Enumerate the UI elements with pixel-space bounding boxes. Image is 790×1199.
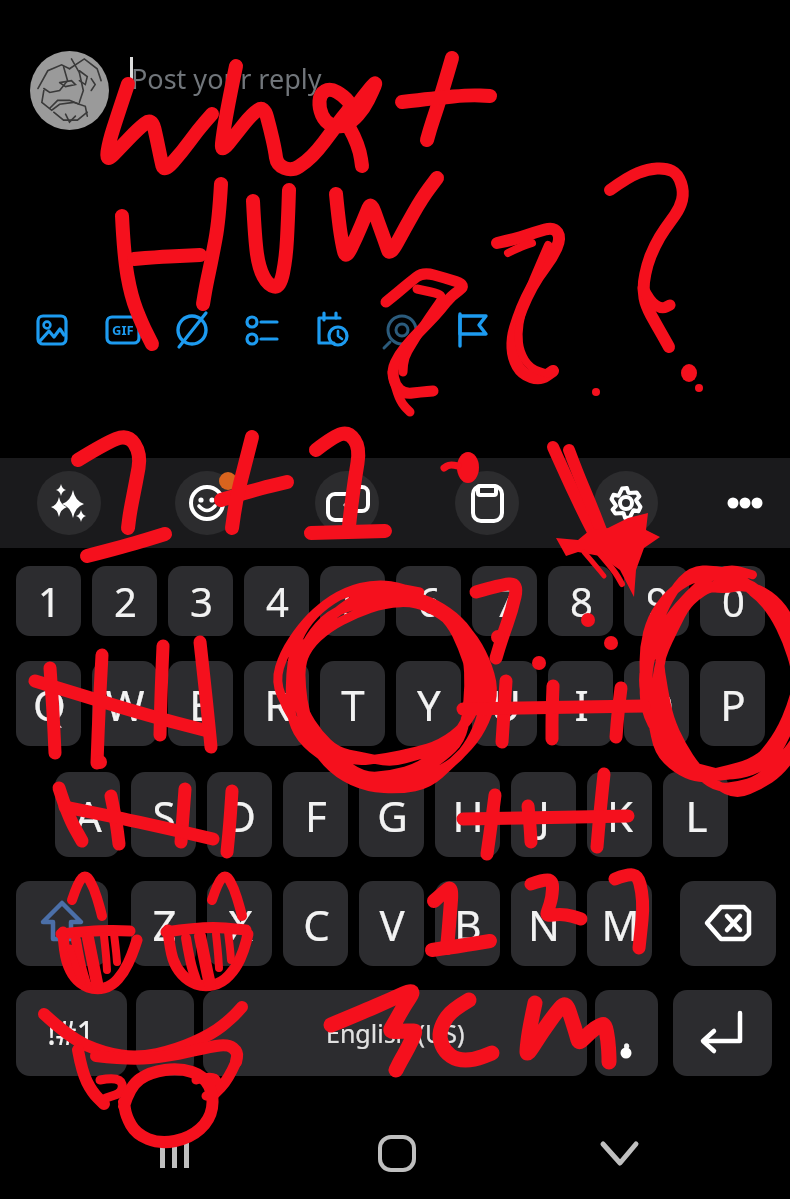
staticText: S (152, 787, 176, 844)
staticText: Y (417, 676, 441, 733)
button[interactable]: 7 (467, 558, 543, 644)
staticText: A (75, 787, 102, 844)
button[interactable]: 3 (163, 558, 239, 644)
staticText: T (341, 676, 365, 733)
staticText: 7 (494, 574, 517, 628)
button[interactable]: 6 (391, 558, 467, 644)
button[interactable]: U (467, 661, 543, 747)
button[interactable]: A (50, 772, 126, 858)
staticText: V (379, 896, 405, 953)
staticText: R (264, 676, 291, 733)
staticText: 6 (418, 574, 441, 628)
button[interactable]: P (695, 661, 771, 747)
staticText: J (538, 787, 550, 844)
staticText: W (105, 676, 145, 733)
staticText: F (305, 787, 327, 844)
staticText: P (720, 676, 746, 733)
button[interactable]: 2 (87, 558, 163, 644)
button[interactable]: O (619, 661, 695, 747)
staticText: 3 (190, 574, 213, 628)
staticText: 0 (722, 574, 745, 628)
button[interactable]: B (430, 881, 506, 967)
staticText: Q (33, 676, 66, 733)
button[interactable]: W (87, 661, 163, 747)
staticText: K (607, 787, 633, 844)
button[interactable]: 4 (239, 558, 315, 644)
button[interactable]: 0 (695, 558, 771, 644)
button[interactable]: M (582, 881, 658, 967)
button[interactable]: C (278, 881, 354, 967)
button[interactable]: Profile picture (30, 51, 109, 130)
button[interactable]: 1 (11, 558, 87, 644)
staticText: 2 (114, 574, 137, 628)
button[interactable]: X (202, 881, 278, 967)
button[interactable]: S (126, 772, 202, 858)
staticText: I (574, 676, 589, 733)
button[interactable]: Z (126, 881, 202, 967)
button[interactable]: English (US) (203, 990, 587, 1076)
button[interactable]: E (163, 661, 239, 747)
staticText: E (189, 676, 213, 733)
staticText: !#1 (47, 1011, 95, 1055)
button[interactable]: J (506, 772, 582, 858)
staticText: O (641, 676, 674, 733)
button[interactable]: T (315, 661, 391, 747)
button[interactable]: Add GIF (107, 314, 139, 346)
button[interactable]: G (354, 772, 430, 858)
staticText: C (303, 896, 330, 953)
staticText: Z (152, 896, 177, 953)
button[interactable]: . (588, 990, 664, 1076)
staticText: D (225, 787, 256, 844)
staticText: N (528, 896, 560, 953)
staticText: M (601, 896, 640, 953)
button[interactable]: H (430, 772, 506, 858)
button[interactable]: 5 (315, 558, 391, 644)
staticText: L (685, 787, 708, 844)
button[interactable]: V (354, 881, 430, 967)
staticText: 5 (342, 574, 365, 628)
staticText: 9 (646, 574, 669, 628)
staticText: G (377, 787, 408, 844)
button[interactable]: N (506, 881, 582, 967)
button[interactable]: D (202, 772, 278, 858)
button[interactable]: Y (391, 661, 467, 747)
staticText: 8 (570, 574, 593, 628)
staticText: H (452, 787, 484, 844)
button[interactable]: K (582, 772, 658, 858)
staticText: GIF (112, 321, 134, 339)
staticText: U (490, 676, 521, 733)
staticText: Post your reply (131, 60, 322, 97)
button[interactable]: !#1 (33, 990, 109, 1076)
staticText: B (454, 896, 482, 953)
button[interactable]: I (543, 661, 619, 747)
button[interactable]: 9 (619, 558, 695, 644)
staticText: English (US) (326, 1016, 465, 1050)
button[interactable]: F (278, 772, 354, 858)
staticText: 4 (266, 574, 289, 628)
button[interactable]: R (239, 661, 315, 747)
button[interactable]: Q (11, 661, 87, 747)
button[interactable]: L (658, 772, 734, 858)
staticText: X (228, 896, 253, 953)
staticText: . (621, 1006, 632, 1060)
staticText: 1 (38, 574, 61, 628)
button[interactable]: 8 (543, 558, 619, 644)
